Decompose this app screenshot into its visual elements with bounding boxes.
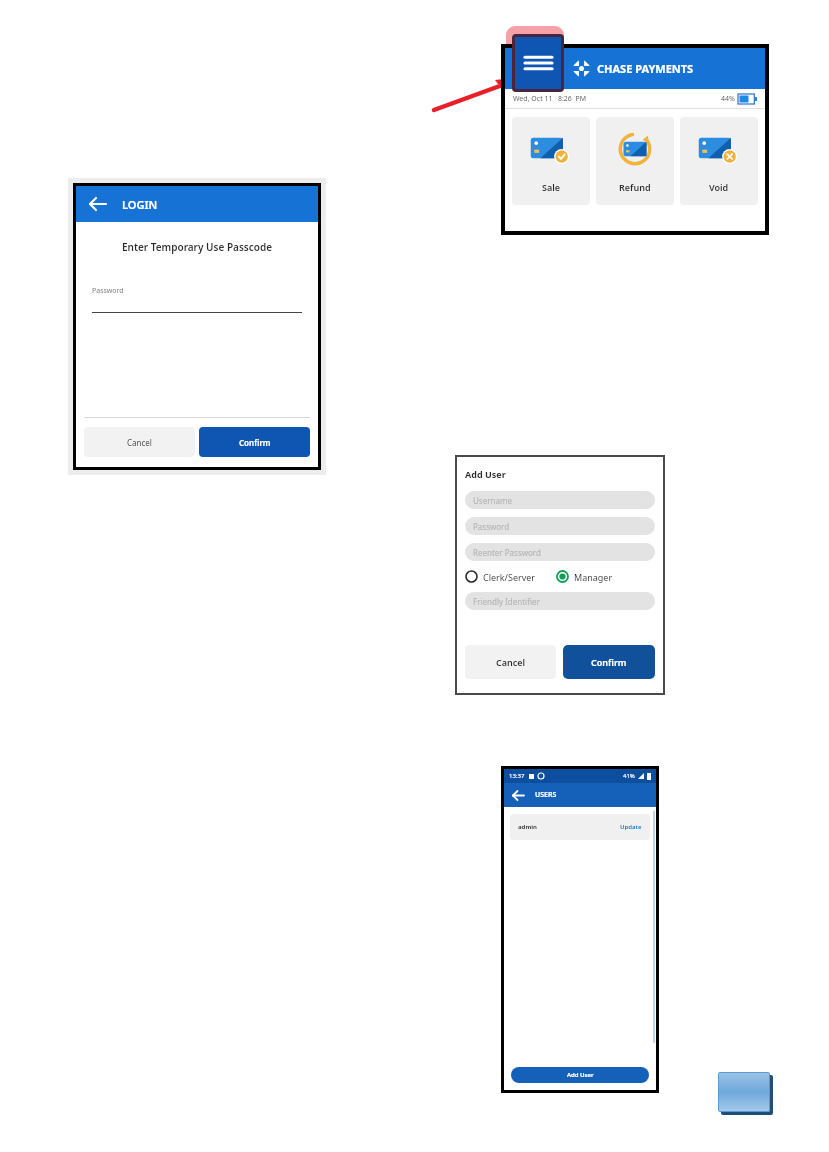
staticText: Cancel — [496, 656, 526, 668]
button[interactable]: Void — [680, 117, 758, 205]
button[interactable]: Confirm — [563, 645, 655, 679]
staticText: Confirm — [239, 437, 271, 448]
staticText: Wed, Oct 11 8:26 PM — [513, 94, 587, 104]
staticText: Void — [709, 181, 729, 193]
staticText: Manager — [574, 571, 613, 583]
staticText: 44% — [721, 94, 735, 104]
button[interactable]: Sale — [512, 117, 590, 205]
button[interactable]: Back — [88, 194, 108, 214]
staticText: Update — [620, 823, 642, 831]
staticText: Refund — [619, 181, 651, 193]
staticText: admin — [518, 823, 537, 831]
button[interactable]: Cancel — [465, 645, 556, 679]
staticText: Enter Temporary Use Passcode — [76, 240, 318, 254]
button[interactable]: Friendly Identifier — [473, 592, 655, 610]
button[interactable]: Back — [76, 186, 318, 222]
button[interactable]: Add User — [511, 1067, 649, 1083]
staticText: Username — [473, 495, 512, 506]
button[interactable]: Username — [473, 491, 655, 509]
staticText: Cancel — [127, 437, 152, 448]
staticText: Clerk/Server — [483, 571, 536, 583]
staticText: Friendly Identifier — [473, 596, 540, 607]
staticText: Password — [473, 521, 510, 532]
button[interactable]: Manager — [556, 570, 613, 583]
button[interactable]: Cancel — [84, 427, 195, 457]
staticText: Add User — [465, 468, 506, 480]
staticText: 41% — [623, 772, 635, 780]
staticText: Reenter Password — [473, 547, 541, 558]
button[interactable]: Refund — [596, 117, 674, 205]
button[interactable]: Reenter Password — [473, 543, 655, 561]
staticText: CHASE PAYMENTS — [597, 61, 694, 76]
staticText: USERS — [535, 790, 557, 800]
staticText: 13:37 — [509, 772, 525, 780]
button[interactable] — [718, 1072, 770, 1112]
button[interactable]: Confirm — [199, 427, 310, 457]
staticText: Confirm — [591, 656, 627, 668]
staticText: Sale — [542, 181, 561, 193]
staticText: LOGIN — [122, 197, 158, 212]
staticText: Password — [92, 286, 124, 296]
staticText: Add User — [567, 1071, 594, 1079]
button[interactable]: Password — [473, 517, 655, 535]
button[interactable]: admin — [518, 814, 642, 840]
button[interactable]: Back — [512, 789, 525, 802]
button[interactable]: Clerk/Server — [465, 570, 536, 583]
button[interactable]: Menu — [515, 37, 561, 89]
button[interactable]: Back — [504, 783, 656, 807]
